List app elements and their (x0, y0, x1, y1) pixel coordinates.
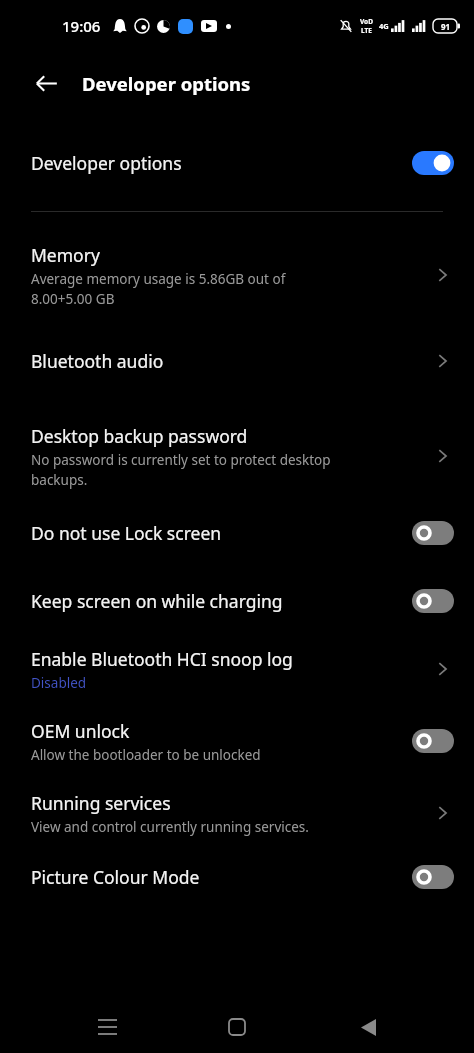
staticText: 91 (441, 21, 451, 32)
staticText: Memory (31, 243, 100, 267)
button[interactable]: Keep screen on while charging (0, 574, 474, 628)
button[interactable]: Memory (0, 234, 474, 316)
staticText: VoD (360, 17, 373, 26)
staticText: Keep screen on while charging (31, 589, 283, 613)
button[interactable]: Home (213, 1003, 261, 1051)
button[interactable]: Bluetooth audio (0, 338, 474, 384)
staticText: Developer options (31, 151, 182, 175)
button[interactable]: Recent apps (83, 1003, 131, 1051)
button[interactable]: Enable Bluetooth HCI snoop log (0, 638, 474, 700)
staticText: Allow the bootloader to be unlocked (31, 746, 261, 764)
button[interactable]: OEM unlock (0, 710, 474, 772)
button[interactable]: Back (26, 63, 66, 103)
staticText: View and control currently running servi… (31, 818, 309, 836)
staticText: Desktop backup password (31, 424, 248, 448)
staticText: 4G (379, 21, 389, 31)
staticText: Average memory usage is 5.86GB out of 8.… (31, 270, 286, 308)
staticText: Do not use Lock screen (31, 521, 222, 545)
button[interactable]: Desktop backup password (0, 416, 474, 496)
button[interactable]: Running services (0, 782, 474, 844)
staticText: Running services (31, 791, 171, 815)
staticText: Picture Colour Mode (31, 865, 200, 889)
button[interactable]: Developer options (0, 137, 474, 189)
staticText: Enable Bluetooth HCI snoop log (31, 647, 293, 671)
staticText: LTE (361, 26, 372, 35)
staticText: 19:06 (62, 16, 101, 36)
staticText: Developer options (82, 71, 251, 96)
staticText: Bluetooth audio (31, 349, 164, 373)
staticText: No password is currently set to protect … (31, 451, 331, 489)
button[interactable]: Back (344, 1003, 392, 1051)
staticText: Disabled (31, 674, 87, 692)
button[interactable]: Do not use Lock screen (0, 506, 474, 560)
staticText: OEM unlock (31, 719, 130, 743)
button[interactable]: Picture Colour Mode (0, 854, 474, 900)
